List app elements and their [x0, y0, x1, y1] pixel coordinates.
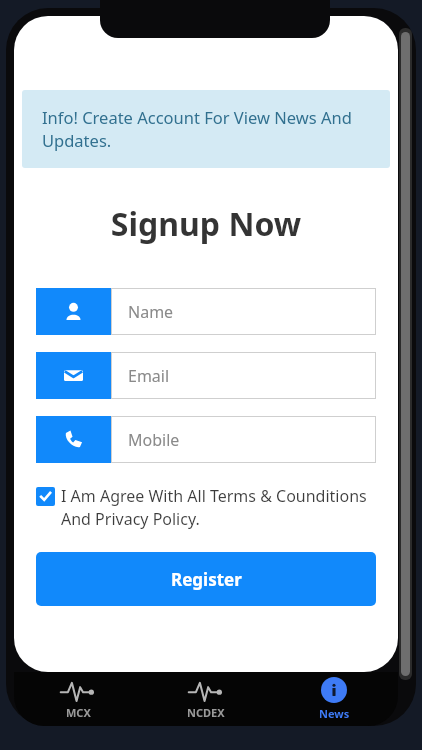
button[interactable]: Register [36, 552, 376, 606]
button[interactable]: I Am Agree With All Terms & Counditions … [36, 485, 376, 530]
button[interactable]: News [270, 672, 398, 726]
staticText: MCX [66, 705, 91, 720]
button[interactable]: NCDEX [142, 672, 270, 726]
staticText: Info! Create Account For View News And U… [42, 106, 370, 152]
staticText: NCDEX [187, 705, 225, 720]
button[interactable]: Email [36, 352, 376, 399]
staticText: Email [128, 365, 170, 387]
staticText: Name [128, 301, 174, 323]
staticText: Mobile [128, 429, 180, 451]
staticText: Register [171, 568, 242, 591]
staticText: News [319, 706, 350, 721]
staticText: Signup Now [14, 202, 398, 246]
button[interactable]: MCX [14, 672, 142, 726]
staticText: I Am Agree With All Terms & Counditions … [61, 485, 376, 530]
button[interactable]: Mobile [36, 416, 376, 463]
button[interactable]: Name [36, 288, 376, 335]
button[interactable]: Info! Create Account For View News And U… [22, 90, 390, 168]
